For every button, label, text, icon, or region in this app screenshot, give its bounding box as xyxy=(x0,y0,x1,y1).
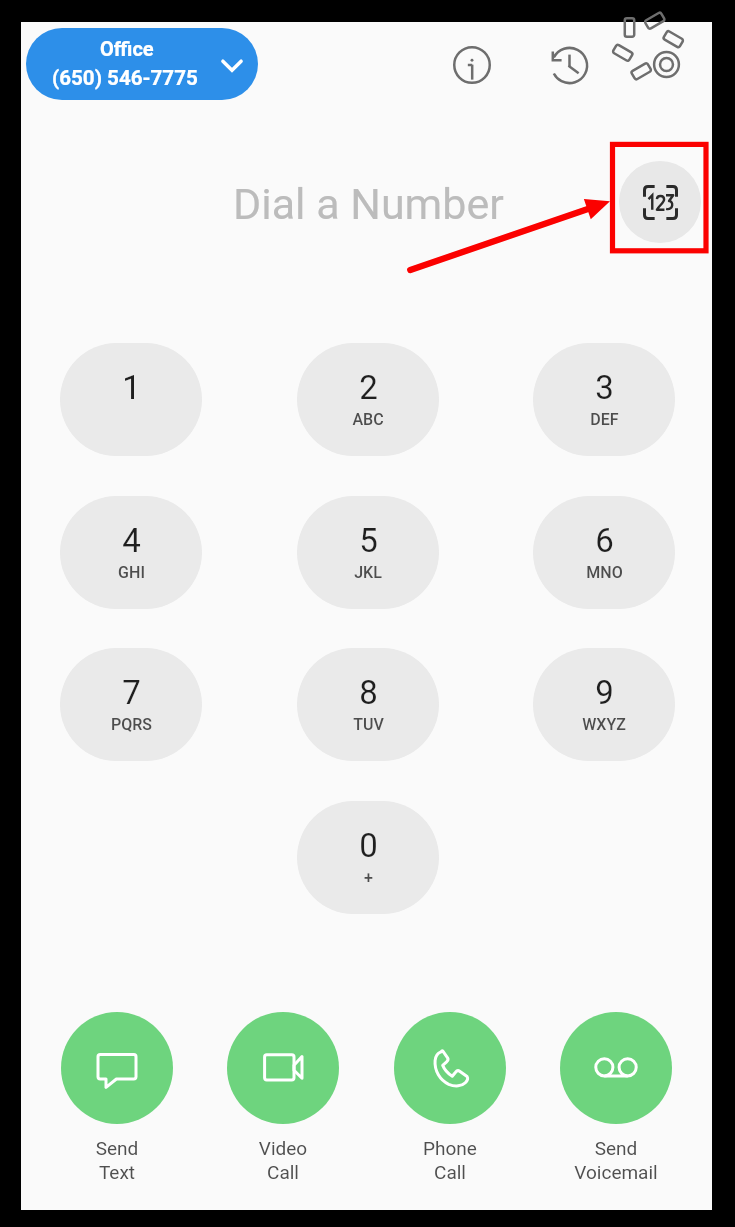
button[interactable]: Video Call xyxy=(200,990,366,1210)
button[interactable]: 4 xyxy=(60,496,202,609)
button[interactable]: 9 xyxy=(533,648,675,761)
button[interactable]: 2 xyxy=(297,343,439,456)
button[interactable]: 5 xyxy=(297,496,439,609)
staticText: ABC xyxy=(352,410,384,429)
staticText: Send Text xyxy=(34,1137,200,1184)
button[interactable]: Send Voicemail xyxy=(533,990,699,1210)
staticText: (650) 546-7775 xyxy=(52,66,198,90)
staticText: Video Call xyxy=(200,1137,366,1184)
staticText: PQRS xyxy=(111,715,152,734)
staticText: Office xyxy=(100,37,154,60)
staticText: Phone Call xyxy=(367,1137,533,1184)
button[interactable]: 3 xyxy=(533,343,675,456)
button[interactable]: Office xyxy=(26,28,258,100)
staticText: + xyxy=(364,868,373,887)
staticText: 6 xyxy=(595,521,614,560)
staticText: TUV xyxy=(353,715,384,734)
button[interactable]: Call history xyxy=(539,35,599,95)
button[interactable]: Phone Call xyxy=(367,990,533,1210)
button[interactable]: 6 xyxy=(533,496,675,609)
staticText: WXYZ xyxy=(582,715,626,734)
button[interactable]: 7 xyxy=(60,648,202,761)
button[interactable]: 1 xyxy=(60,343,202,456)
staticText: GHI xyxy=(118,563,145,582)
staticText: 0 xyxy=(359,826,378,865)
staticText: 8 xyxy=(359,673,378,712)
staticText: JKL xyxy=(354,563,382,582)
staticText: 4 xyxy=(122,521,141,560)
staticText: 3 xyxy=(595,368,614,407)
staticText: MNO xyxy=(586,563,623,582)
button[interactable]: Show keypad xyxy=(619,161,701,243)
button[interactable]: Settings xyxy=(636,34,696,94)
staticText: Send Voicemail xyxy=(533,1137,699,1184)
staticText: 2 xyxy=(359,368,378,407)
staticText: DEF xyxy=(590,410,619,429)
staticText: 7 xyxy=(122,673,141,712)
staticText: Dial a Number xyxy=(233,179,504,229)
staticText: 1 xyxy=(122,368,141,407)
staticText: 5 xyxy=(359,521,378,560)
button[interactable]: Info xyxy=(442,35,502,95)
staticText: 9 xyxy=(595,673,614,712)
button[interactable]: 0 xyxy=(297,801,439,914)
button[interactable]: Send Text xyxy=(34,990,200,1210)
button[interactable]: 8 xyxy=(297,648,439,761)
